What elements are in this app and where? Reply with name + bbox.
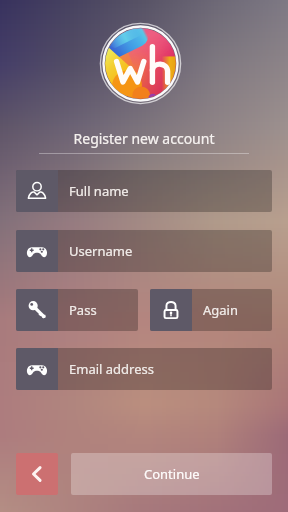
button[interactable]: Back [16, 453, 58, 495]
staticText: Again [203, 301, 238, 319]
button[interactable]: Email address [16, 348, 272, 390]
staticText: Register new account [0, 129, 288, 148]
staticText: Username [69, 242, 133, 260]
button[interactable]: Username [16, 230, 272, 272]
button[interactable]: Again [150, 289, 272, 331]
button[interactable]: Continue [71, 453, 272, 495]
staticText: Continue [144, 465, 200, 483]
button[interactable]: Full name [16, 170, 272, 212]
staticText: Full name [69, 182, 129, 200]
staticText: Pass [69, 301, 97, 319]
button[interactable]: Pass [16, 289, 138, 331]
staticText: Email address [69, 360, 154, 378]
